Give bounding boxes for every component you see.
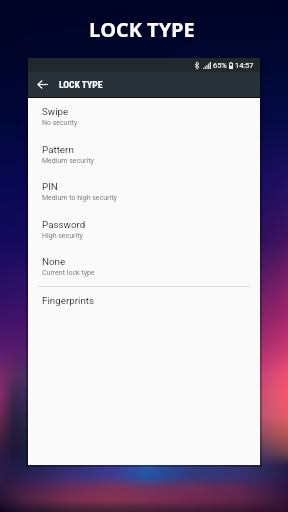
- button[interactable]: PIN: [28, 181, 260, 219]
- staticText: High security: [42, 232, 83, 240]
- staticText: Medium to high security: [42, 194, 117, 202]
- staticText: Password: [42, 219, 86, 230]
- staticText: LOCK TYPE: [59, 79, 103, 90]
- staticText: Medium security: [42, 157, 94, 165]
- staticText: Swipe: [42, 106, 69, 117]
- staticText: None: [42, 256, 66, 267]
- staticText: Pattern: [42, 144, 74, 155]
- button[interactable]: Swipe: [28, 106, 260, 144]
- button[interactable]: Fingerprints: [28, 288, 260, 310]
- staticText: PIN: [42, 181, 58, 192]
- button[interactable]: Pattern: [28, 144, 260, 182]
- button[interactable]: None: [28, 256, 260, 294]
- staticText: Current lock type: [42, 269, 95, 277]
- button[interactable]: Back: [34, 72, 51, 97]
- staticText: LOCK TYPE: [89, 16, 195, 43]
- staticText: 65%: [213, 61, 227, 70]
- staticText: 14:57: [235, 61, 254, 70]
- button[interactable]: Password: [28, 219, 260, 257]
- staticText: Fingerprints: [42, 295, 95, 306]
- staticText: No security: [42, 119, 78, 127]
